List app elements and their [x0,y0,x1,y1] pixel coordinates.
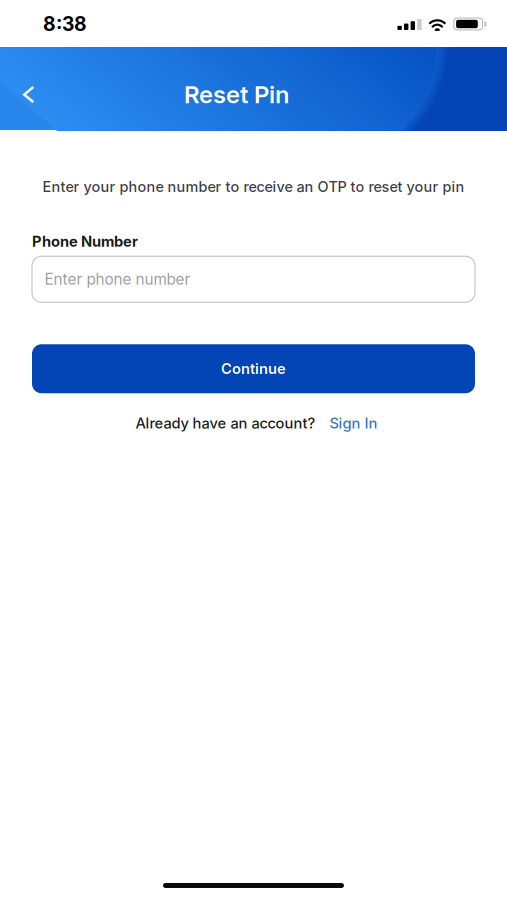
staticText: Enter phone number [44,270,190,289]
button[interactable]: Back [0,48,52,130]
staticText: Reset Pin [184,80,289,109]
staticText: Sign In [329,414,377,432]
staticText: Already have an account? [135,414,315,432]
staticText: Enter your phone number to receive an OT… [42,178,464,195]
staticText: 8:38 [43,12,87,36]
staticText: Continue [221,360,286,378]
staticText: Phone Number [32,232,138,250]
button[interactable]: Sign In [315,414,377,432]
button[interactable]: Continue [32,344,475,393]
